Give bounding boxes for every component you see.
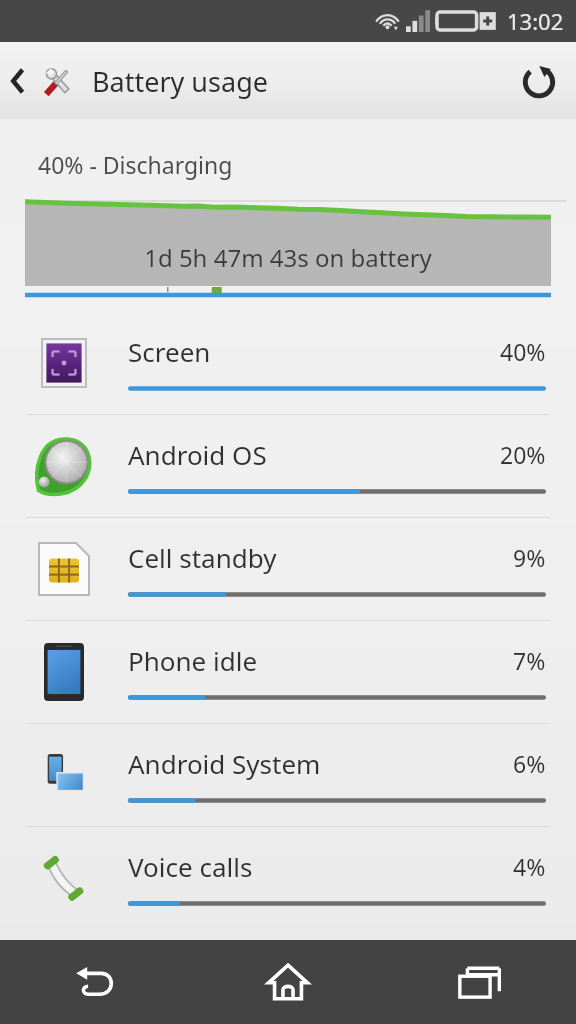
button[interactable]: Cell standby xyxy=(0,518,576,620)
staticText: 40% xyxy=(500,336,546,367)
staticText: Voice calls xyxy=(128,849,513,884)
staticText: 20% xyxy=(500,439,546,470)
staticText: Battery usage xyxy=(92,63,268,100)
button[interactable]: Voice calls xyxy=(0,827,576,929)
staticText: 9% xyxy=(513,542,546,573)
staticText: 1d 5h 47m 43s on battery xyxy=(144,241,432,274)
staticText: 13:02 xyxy=(507,6,564,36)
staticText: 4% xyxy=(513,851,546,882)
staticText: Android OS xyxy=(128,437,500,472)
button[interactable]: Refresh xyxy=(510,52,568,110)
button[interactable]: Battery usage xyxy=(0,51,278,111)
staticText: 40% - Discharging xyxy=(38,149,233,180)
button[interactable]: Android System xyxy=(0,724,576,826)
staticText: 7% xyxy=(513,645,546,676)
button[interactable]: Recent apps xyxy=(384,940,576,1024)
button[interactable]: Phone idle xyxy=(0,621,576,723)
button[interactable]: Home xyxy=(192,940,384,1024)
button[interactable]: Back xyxy=(0,940,192,1024)
staticText: Android System xyxy=(128,746,513,781)
button[interactable]: Screen xyxy=(0,312,576,414)
staticText: Screen xyxy=(128,334,500,369)
button[interactable]: Android OS xyxy=(0,415,576,517)
staticText: 6% xyxy=(513,748,546,779)
staticText: Cell standby xyxy=(128,540,513,575)
staticText: Phone idle xyxy=(128,643,513,678)
